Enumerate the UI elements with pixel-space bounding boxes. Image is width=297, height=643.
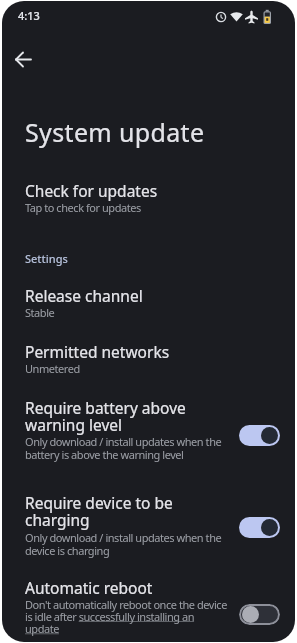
- button[interactable]: Check for updates: [2, 175, 295, 223]
- staticText: Stable: [25, 305, 55, 320]
- button[interactable]: Automatic reboot: [2, 572, 295, 642]
- staticText: Only download / install updates when the…: [25, 434, 222, 462]
- button[interactable]: Require device to be charging: [2, 485, 295, 557]
- staticText: Unmetered: [25, 361, 80, 376]
- staticText: Tap to check for updates: [25, 200, 141, 215]
- staticText: Only download / install updates when the…: [25, 530, 222, 558]
- staticText: 4:13: [18, 8, 40, 23]
- button[interactable]: Require battery above warning level: [2, 390, 295, 462]
- staticText: Settings: [25, 251, 68, 266]
- staticText: System update: [25, 115, 205, 149]
- button[interactable]: Release channel: [2, 279, 295, 327]
- button[interactable]: [4, 40, 44, 80]
- button[interactable]: [239, 604, 280, 625]
- staticText: Check for updates: [25, 180, 158, 201]
- staticText: Require battery above warning level: [25, 397, 186, 436]
- staticText: Permitted networks: [25, 341, 170, 362]
- staticText: Automatic reboot: [25, 577, 153, 598]
- button[interactable]: Permitted networks: [2, 335, 295, 383]
- staticText: Don't automatically reboot once the devi…: [25, 597, 227, 636]
- button[interactable]: [239, 517, 280, 538]
- staticText: Release channel: [25, 285, 143, 306]
- button[interactable]: [239, 425, 280, 446]
- staticText: Require device to be charging: [25, 492, 173, 531]
